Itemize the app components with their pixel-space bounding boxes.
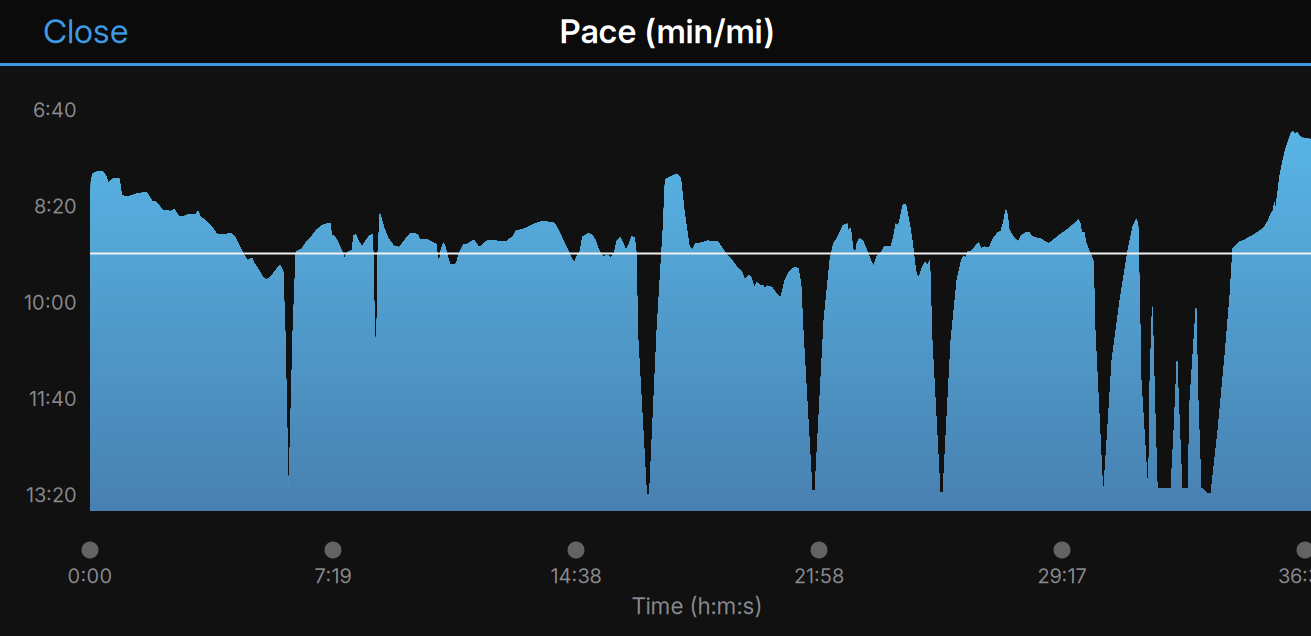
staticText: Pace (min/mi) — [559, 11, 774, 51]
staticText: Close — [43, 11, 128, 51]
staticText: 10:00 — [24, 291, 77, 314]
staticText: 29:17 — [1037, 564, 1086, 588]
staticText: 7:19 — [314, 564, 351, 588]
staticText: 6:40 — [33, 98, 77, 122]
staticText: 8:20 — [34, 194, 77, 218]
staticText: 36:36 — [1278, 564, 1311, 588]
staticText: Time (h:m:s) — [631, 593, 762, 619]
staticText: 21:58 — [794, 564, 844, 588]
staticText: 14:38 — [550, 564, 601, 588]
staticText: 13:20 — [26, 483, 77, 507]
staticText: 0:00 — [67, 564, 112, 588]
button[interactable]: Close — [43, 0, 145, 62]
staticText: 11:40 — [29, 387, 77, 411]
